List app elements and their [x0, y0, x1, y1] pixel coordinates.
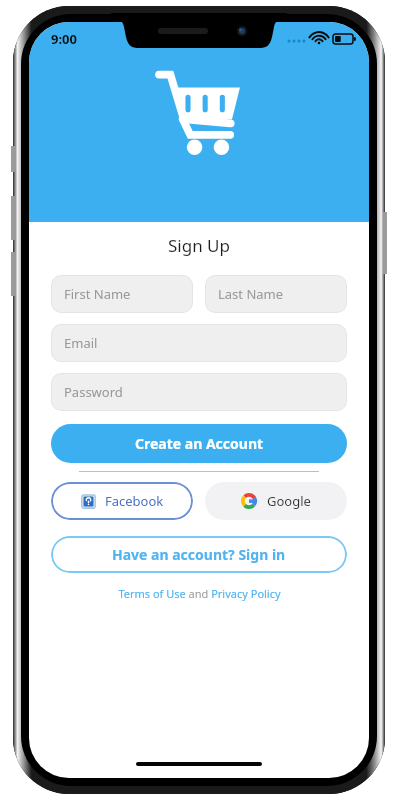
staticText: Last Name: [218, 285, 284, 303]
button[interactable]: Sign up with Google: [205, 482, 347, 520]
button[interactable]: Have an account? Sign in: [51, 536, 347, 573]
button[interactable]: Sign up with Facebook: [51, 482, 193, 520]
button[interactable]: Last Name: [205, 275, 347, 313]
button[interactable]: Create an Account: [51, 424, 347, 463]
staticText: Google: [267, 492, 311, 510]
button[interactable]: Email: [51, 324, 347, 362]
button[interactable]: Password: [51, 373, 347, 411]
other: Sign up with Facebook: [81, 494, 96, 509]
other: Sign up with Google: [241, 493, 257, 509]
other: Shopping cart: [155, 64, 243, 156]
staticText: Have an account? Sign in: [112, 545, 286, 564]
staticText: First Name: [64, 285, 131, 303]
staticText: Terms of Use and Privacy Policy: [118, 586, 281, 601]
staticText: Facebook: [105, 492, 164, 510]
staticText: Email: [64, 334, 98, 352]
staticText: Sign Up: [168, 234, 230, 257]
staticText: Create an Account: [135, 434, 264, 453]
staticText: Password: [64, 383, 123, 401]
button[interactable]: First Name: [51, 275, 193, 313]
staticText: 9:00: [51, 30, 77, 48]
button[interactable]: Terms of Use and Privacy Policy: [51, 586, 347, 601]
